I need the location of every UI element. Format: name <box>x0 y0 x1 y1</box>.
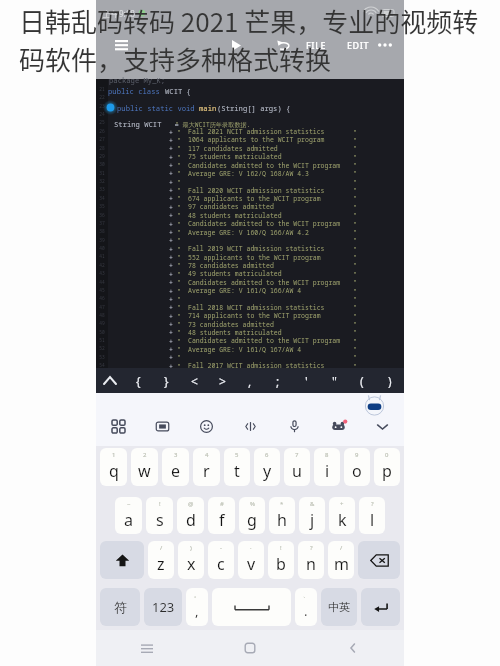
staticText: 25 <box>96 119 108 125</box>
button[interactable]: + <box>329 497 355 534</box>
button[interactable]: 123 <box>144 588 182 626</box>
button[interactable]: , <box>236 368 264 393</box>
button[interactable]: Collapse keyboard <box>360 406 404 446</box>
staticText: ~ <box>127 500 131 508</box>
button[interactable]: } <box>152 368 180 393</box>
staticText: (String[] args) { <box>217 103 291 113</box>
staticText: Candidates admitted to the WCIT program <box>188 161 341 170</box>
staticText: " <box>353 144 357 153</box>
staticText: 2 <box>143 451 147 459</box>
staticText: 0 <box>385 451 389 459</box>
button[interactable]: More options <box>372 32 398 58</box>
button[interactable]: 4 <box>193 448 220 486</box>
button[interactable]: 3 <box>162 448 189 486</box>
button[interactable]: 9 <box>344 448 370 486</box>
button[interactable]: Games <box>316 406 360 446</box>
button[interactable]: { <box>124 368 152 393</box>
staticText: " <box>177 362 181 371</box>
button[interactable]: 6 <box>254 448 280 486</box>
staticText: " <box>177 236 181 245</box>
staticText: " <box>353 128 357 137</box>
button[interactable]: - <box>208 541 234 579</box>
staticText: 22 <box>96 94 108 100</box>
staticText: a <box>124 509 133 531</box>
button[interactable]: " <box>320 368 348 393</box>
staticText: 44 <box>96 279 108 285</box>
staticText: 48 students matriculated <box>188 211 282 220</box>
staticText: 。 <box>194 591 200 599</box>
button[interactable]: EDIT <box>345 39 372 51</box>
button[interactable]: 0 <box>374 448 400 486</box>
staticText: 53 <box>96 354 108 360</box>
button[interactable]: Backspace <box>358 541 400 579</box>
button[interactable]: Emoji <box>184 406 228 446</box>
staticText: 31 <box>96 170 108 176</box>
staticText: Fall 2019 WCIT admission statistics <box>188 244 325 253</box>
staticText: 674 applicants to the WCIT program <box>188 194 321 203</box>
staticText: w <box>138 460 151 482</box>
staticText: 39 <box>96 237 108 243</box>
button[interactable]: # <box>208 497 235 534</box>
button[interactable]: 2 <box>131 448 158 486</box>
staticText: f <box>219 509 225 531</box>
staticText: + <box>169 186 173 195</box>
button[interactable]: Space <box>212 588 291 626</box>
button[interactable]: 5 <box>224 448 250 486</box>
button[interactable]: Assistant <box>365 395 384 415</box>
button[interactable]: ? <box>298 541 324 579</box>
button[interactable]: Menu <box>108 32 134 58</box>
staticText: > <box>219 373 226 389</box>
staticText: ? <box>371 500 374 508</box>
button[interactable]: Apps <box>96 406 140 446</box>
button[interactable]: ' <box>292 368 320 393</box>
button[interactable]: ; <box>264 368 292 393</box>
button[interactable]: * <box>269 497 295 534</box>
staticText: " <box>177 211 181 220</box>
staticText: + <box>169 136 173 145</box>
button[interactable]: 8 <box>314 448 340 486</box>
button[interactable]: Shift <box>100 541 144 579</box>
button[interactable]: / <box>328 541 354 579</box>
button[interactable]: % <box>239 497 265 534</box>
button[interactable]: FILE <box>304 39 329 51</box>
button[interactable]: 1 <box>100 448 127 486</box>
button[interactable]: · <box>238 541 264 579</box>
button[interactable] <box>96 368 124 393</box>
button[interactable]: > <box>208 368 236 393</box>
button[interactable]: ! <box>268 541 294 579</box>
staticText: Candidates admitted to the WCIT program <box>188 336 341 345</box>
staticText: + <box>169 194 173 203</box>
button[interactable]: Voice input <box>272 406 316 446</box>
button[interactable]: Undo <box>272 33 296 57</box>
staticText: Fall 2017 WCIT admission statistics <box>188 361 325 370</box>
button[interactable]: ? <box>359 497 385 534</box>
staticText: public static void <box>117 103 199 113</box>
button[interactable]: < <box>180 368 208 393</box>
staticText: + <box>169 220 173 229</box>
button[interactable]: @ <box>177 497 204 534</box>
button[interactable]: Recents <box>96 630 198 666</box>
button[interactable]: 中英 <box>321 588 357 626</box>
button[interactable]: Back <box>301 630 404 666</box>
staticText: " <box>177 353 181 362</box>
button[interactable]: Enter <box>361 588 400 626</box>
button[interactable]: ) <box>376 368 404 393</box>
button[interactable]: 7 <box>284 448 310 486</box>
button[interactable]: Clipboard <box>140 406 184 446</box>
staticText: " <box>353 178 357 187</box>
staticText: 56 <box>96 379 108 385</box>
button[interactable]: 符 <box>100 588 140 626</box>
button[interactable]: / <box>148 541 174 579</box>
button[interactable]: ~ <box>115 497 142 534</box>
button[interactable]: Run <box>224 33 248 57</box>
button[interactable]: 、 <box>295 588 317 626</box>
staticText: 日韩乱码转码 2021 芒果，专业的视频转码软件，支持多种格式转换 <box>19 2 485 78</box>
button[interactable]: 。 <box>186 588 208 626</box>
button[interactable]: & <box>299 497 325 534</box>
button[interactable]: Translate <box>228 406 272 446</box>
staticText: 1064 applicants to the WCIT program <box>188 135 325 144</box>
button[interactable]: ) <box>178 541 204 579</box>
button[interactable]: ( <box>348 368 376 393</box>
button[interactable]: ! <box>146 497 173 534</box>
button[interactable]: Home <box>198 630 301 666</box>
